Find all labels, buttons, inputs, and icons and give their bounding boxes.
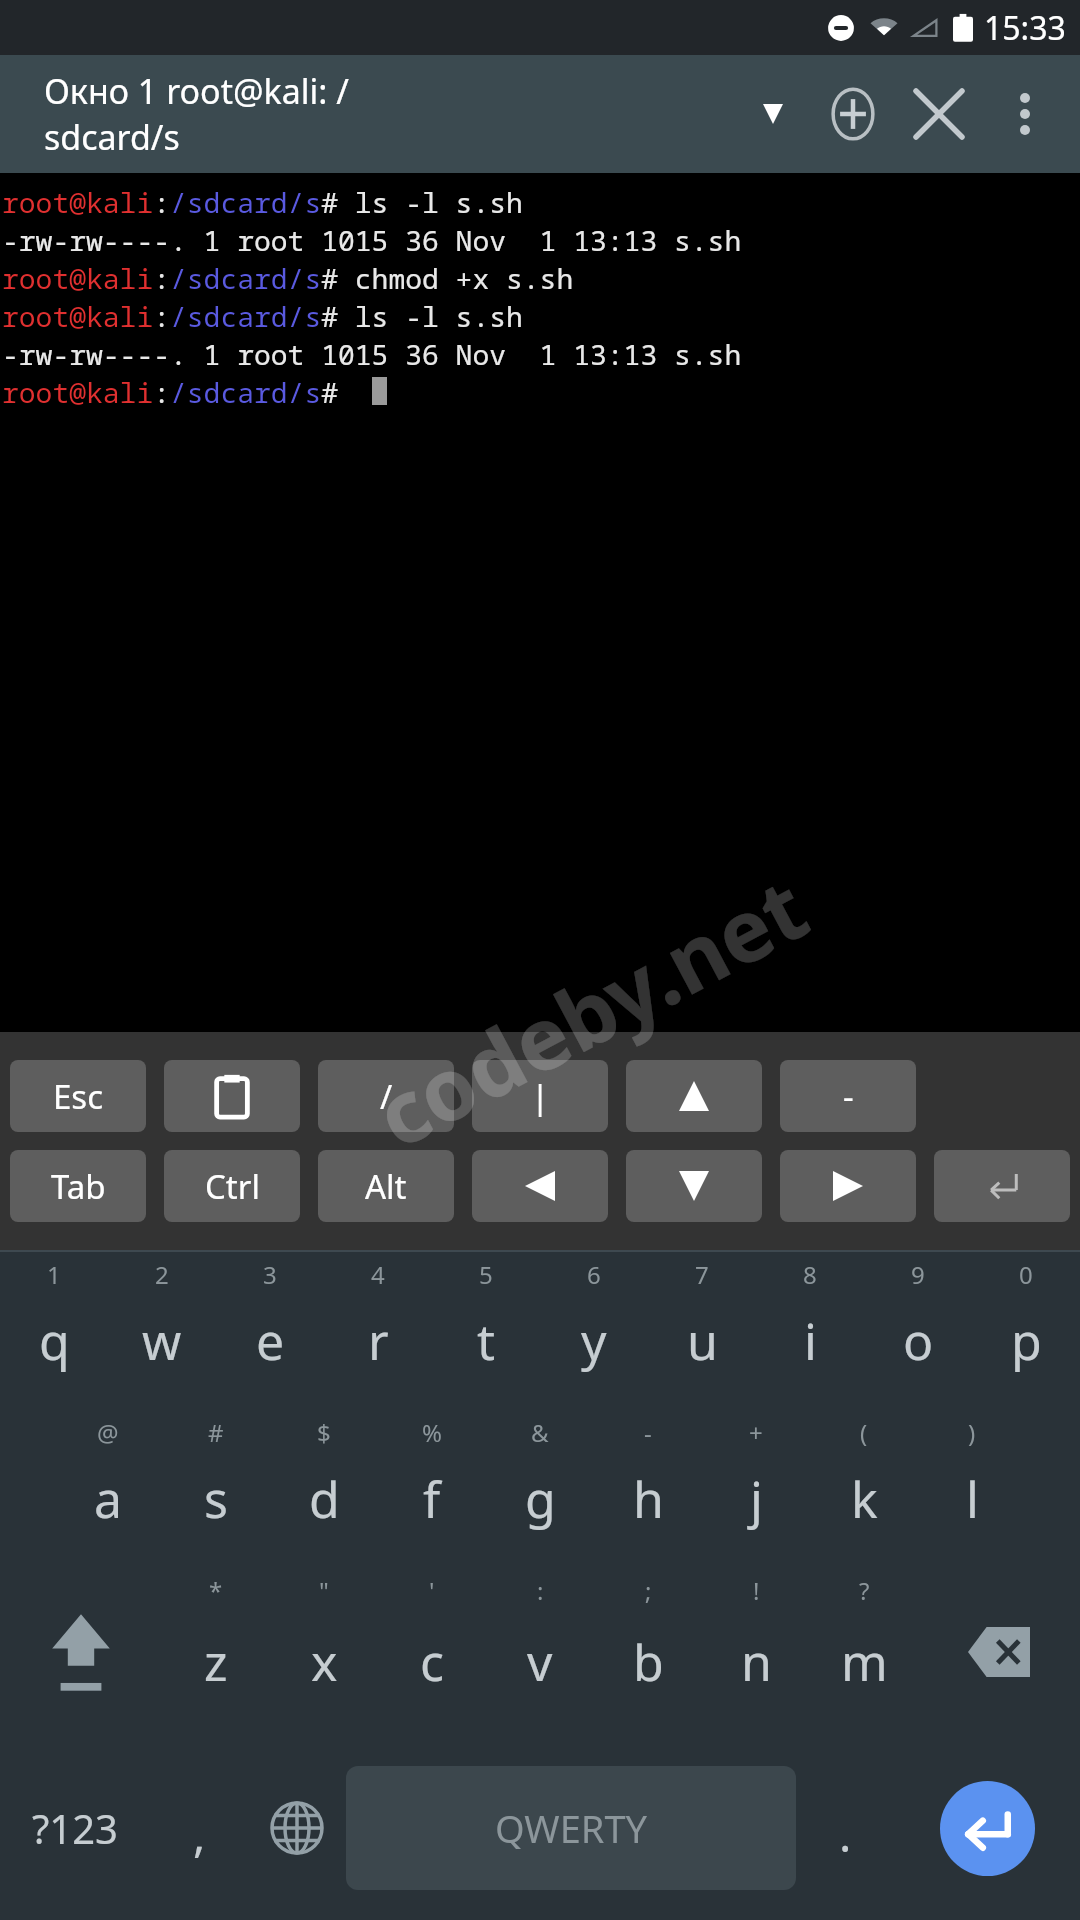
staticText: Окно 1 root@kali: / sdcard/s (44, 68, 349, 160)
staticText: a (94, 1465, 123, 1533)
button[interactable]: ? (810, 1568, 918, 1736)
staticText: c (420, 1628, 444, 1696)
button[interactable]: Enter (934, 1150, 1070, 1222)
button[interactable]: $ (270, 1410, 378, 1568)
button[interactable]: Change language (248, 1736, 346, 1920)
button[interactable]: Up (626, 1060, 762, 1132)
staticText: 6 (587, 1258, 601, 1291)
button[interactable]: QWERTY (346, 1766, 796, 1890)
button[interactable]: / (318, 1060, 454, 1132)
button[interactable]: 9 (864, 1252, 972, 1410)
button[interactable]: - (594, 1410, 702, 1568)
staticText: ? (859, 1574, 870, 1607)
staticText: 7 (695, 1258, 709, 1291)
button[interactable]: 2 (108, 1252, 216, 1410)
button[interactable]: 0 (972, 1252, 1080, 1410)
button[interactable]: New window (810, 71, 896, 157)
staticText: 2 (155, 1258, 169, 1291)
button[interactable]: 1 (0, 1252, 108, 1410)
staticText: 3 (263, 1258, 277, 1291)
staticText: j (750, 1465, 763, 1533)
staticText: i (804, 1307, 817, 1375)
staticText: | (531, 1074, 550, 1119)
staticText: - (644, 1416, 652, 1449)
button[interactable]: + (702, 1410, 810, 1568)
button[interactable]: * (162, 1568, 270, 1736)
staticText: 15:33 (984, 6, 1066, 50)
button[interactable]: . (796, 1736, 894, 1920)
button[interactable]: @ (54, 1410, 162, 1568)
staticText: * (209, 1574, 223, 1607)
button[interactable]: | (472, 1060, 608, 1132)
button[interactable]: - (780, 1060, 916, 1132)
button[interactable]: 6 (540, 1252, 648, 1410)
button[interactable]: Ctrl (164, 1150, 300, 1222)
button[interactable]: : (486, 1568, 594, 1736)
button[interactable]: Down (626, 1150, 762, 1222)
staticText: l (966, 1465, 979, 1533)
staticText: % (422, 1416, 442, 1449)
staticText: + (749, 1416, 763, 1449)
staticText: p (1011, 1307, 1042, 1375)
staticText: 8 (803, 1258, 817, 1291)
button[interactable]: " (270, 1568, 378, 1736)
button[interactable]: Backspace (918, 1568, 1080, 1736)
staticText: 0 (1019, 1258, 1033, 1291)
staticText: root@kali:/sdcard/s# chmod +x s.sh (2, 259, 574, 297)
button[interactable]: Right (780, 1150, 916, 1222)
staticText: x (311, 1628, 338, 1696)
staticText: @ (97, 1416, 119, 1449)
staticText: z (204, 1628, 228, 1696)
button[interactable]: 4 (324, 1252, 432, 1410)
staticText: $ (317, 1416, 331, 1449)
staticText: -rw-rw----. 1 root 1015 36 Nov 1 13:13 s… (2, 335, 742, 373)
button[interactable]: , (150, 1736, 248, 1920)
button[interactable]: More options (982, 71, 1068, 157)
button[interactable]: Alt (318, 1150, 454, 1222)
button[interactable]: Left (472, 1150, 608, 1222)
staticText: / (380, 1074, 393, 1119)
button[interactable]: ?123 (0, 1736, 150, 1920)
staticText: # (208, 1416, 224, 1449)
button[interactable]: & (486, 1410, 594, 1568)
button[interactable]: Paste (164, 1060, 300, 1132)
button[interactable]: Enter (894, 1736, 1080, 1920)
button[interactable]: ' (378, 1568, 486, 1736)
staticText: root@kali:/sdcard/s# ls -l s.sh (2, 297, 523, 335)
button[interactable]: 3 (216, 1252, 324, 1410)
staticText: ! (753, 1574, 760, 1607)
button[interactable]: Окно 1 root@kali: / sdcard/s (0, 55, 742, 173)
button[interactable]: ! (702, 1568, 810, 1736)
button[interactable]: 8 (756, 1252, 864, 1410)
staticText: . (839, 1803, 852, 1866)
button[interactable]: Esc (10, 1060, 146, 1132)
button[interactable]: 5 (432, 1252, 540, 1410)
button[interactable]: ) (918, 1410, 1026, 1568)
staticText: ; (645, 1574, 652, 1607)
button[interactable]: Select window (742, 83, 804, 145)
button[interactable]: # (162, 1410, 270, 1568)
staticText: w (142, 1307, 182, 1375)
staticText: Esc (53, 1074, 103, 1119)
staticText: ?123 (32, 1801, 118, 1855)
staticText: h (633, 1465, 664, 1533)
button[interactable]: ; (594, 1568, 702, 1736)
staticText: -rw-rw----. 1 root 1015 36 Nov 1 13:13 s… (2, 221, 742, 259)
staticText: ' (429, 1574, 435, 1607)
button[interactable]: ( (810, 1410, 918, 1568)
staticText: Ctrl (205, 1164, 260, 1209)
button[interactable]: root@kali:/sdcard/s# ls -l s.sh (0, 173, 1080, 1032)
button[interactable]: % (378, 1410, 486, 1568)
staticText: m (841, 1628, 888, 1696)
staticText: v (527, 1628, 553, 1696)
staticText: b (633, 1628, 664, 1696)
button[interactable]: Tab (10, 1150, 146, 1222)
button[interactable]: Shift (0, 1568, 162, 1736)
button[interactable]: Close window (896, 71, 982, 157)
staticText: r (368, 1307, 389, 1375)
staticText: 9 (911, 1258, 925, 1291)
staticText: q (39, 1307, 70, 1375)
button[interactable]: 7 (648, 1252, 756, 1410)
staticText: 4 (371, 1258, 385, 1291)
staticText: f (423, 1465, 441, 1533)
